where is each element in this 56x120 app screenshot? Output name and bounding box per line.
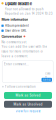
button[interactable]: Mark as Solved: [4, 92, 52, 99]
staticText: Mark as Solved: [15, 94, 40, 97]
staticText: Enter comment...: [4, 63, 29, 66]
staticText: leave a comment.: [1, 54, 28, 58]
staticText: Send: [43, 78, 51, 81]
staticText: You can add the user with the: [1, 45, 47, 48]
staticText: Mark as Unsolved: [13, 102, 42, 106]
staticText: Follow conversation: [5, 85, 36, 88]
staticText: More information: [1, 18, 28, 22]
button[interactable]: Cancel: [45, 74, 51, 76]
staticText: Reported on Jan 14 2024 10:23: [5, 12, 53, 15]
button[interactable]: Follow conversation: [2, 85, 36, 88]
staticText: Your not allowed to push: [5, 7, 44, 11]
staticText: Update Readme: [5, 1, 32, 6]
staticText: View full request: [15, 110, 40, 113]
button[interactable]: Mark as Unsolved: [4, 101, 52, 108]
button[interactable]: Send: [41, 78, 52, 82]
staticText: issue for more information or: [1, 50, 43, 53]
staticText: Album president: [5, 24, 29, 27]
button[interactable]: View full request: [4, 110, 52, 113]
staticText: Cancel: [45, 72, 51, 78]
staticText: Conversation: [1, 34, 22, 38]
staticText: User drive URL: [5, 29, 27, 32]
staticText: No comments yet.: [1, 40, 27, 44]
